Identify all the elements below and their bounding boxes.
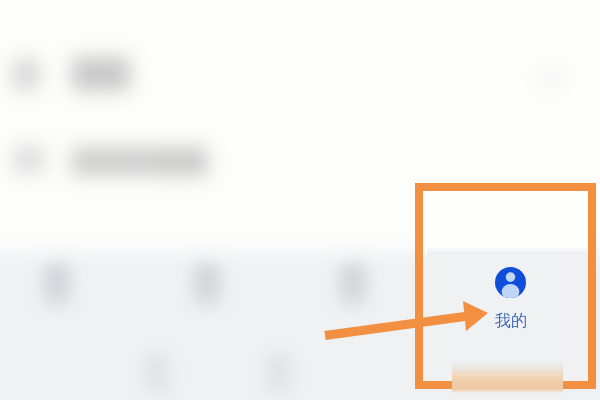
button[interactable]: Orders — [124, 348, 190, 398]
button[interactable]: Cart — [246, 348, 312, 398]
button[interactable]: Back — [4, 52, 52, 100]
button[interactable]: Menu — [4, 140, 52, 184]
button[interactable]: 我的 — [478, 262, 543, 334]
button[interactable]: Discover — [174, 258, 240, 310]
button[interactable]: Messages — [320, 258, 386, 310]
staticText: 我的 — [495, 311, 527, 331]
button[interactable]: Home — [24, 258, 90, 310]
